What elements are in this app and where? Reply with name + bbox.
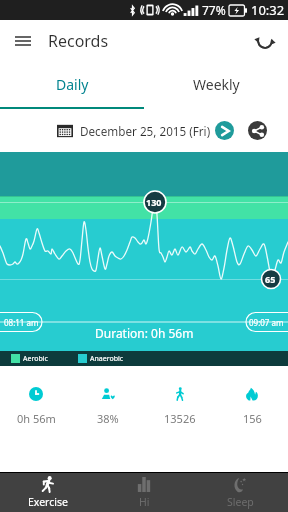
staticText: Sleep: [227, 495, 254, 509]
button[interactable]: Refresh: [248, 24, 282, 58]
staticText: Exercise: [28, 495, 68, 509]
staticText: Aerobic: [23, 354, 48, 364]
staticText: Records: [48, 30, 109, 52]
staticText: Weekly: [193, 75, 240, 94]
staticText: Anaerobic: [90, 354, 124, 364]
button[interactable]: Daily: [0, 62, 144, 107]
staticText: 09:07 am: [249, 317, 284, 328]
button[interactable]: Menu: [6, 24, 40, 58]
staticText: December 25, 2015 (Fri): [80, 123, 211, 139]
staticText: Duration: 0h 56m: [95, 325, 194, 341]
button[interactable]: Next day: [215, 121, 234, 140]
staticText: 38%: [97, 411, 119, 426]
staticText: 13526: [164, 411, 196, 426]
staticText: 65: [265, 273, 276, 285]
staticText: 77%: [202, 2, 226, 18]
staticText: 10:32: [251, 1, 285, 19]
button[interactable]: Exercise: [0, 473, 96, 512]
button[interactable]: Weekly: [144, 62, 288, 107]
button[interactable]: Hi: [96, 473, 192, 512]
button[interactable]: 38%: [72, 387, 144, 426]
button[interactable]: 0h 56m: [0, 387, 72, 426]
staticText: Hi: [139, 495, 150, 509]
button[interactable]: 13526: [144, 387, 216, 426]
staticText: 130: [146, 196, 162, 208]
button[interactable]: Share: [248, 121, 267, 140]
staticText: 08:11 am: [4, 317, 39, 328]
staticText: 0h 56m: [17, 411, 56, 426]
button[interactable]: Sleep: [192, 473, 288, 512]
staticText: 156: [243, 411, 262, 426]
button[interactable]: 156: [216, 387, 288, 426]
staticText: Daily: [56, 75, 89, 94]
